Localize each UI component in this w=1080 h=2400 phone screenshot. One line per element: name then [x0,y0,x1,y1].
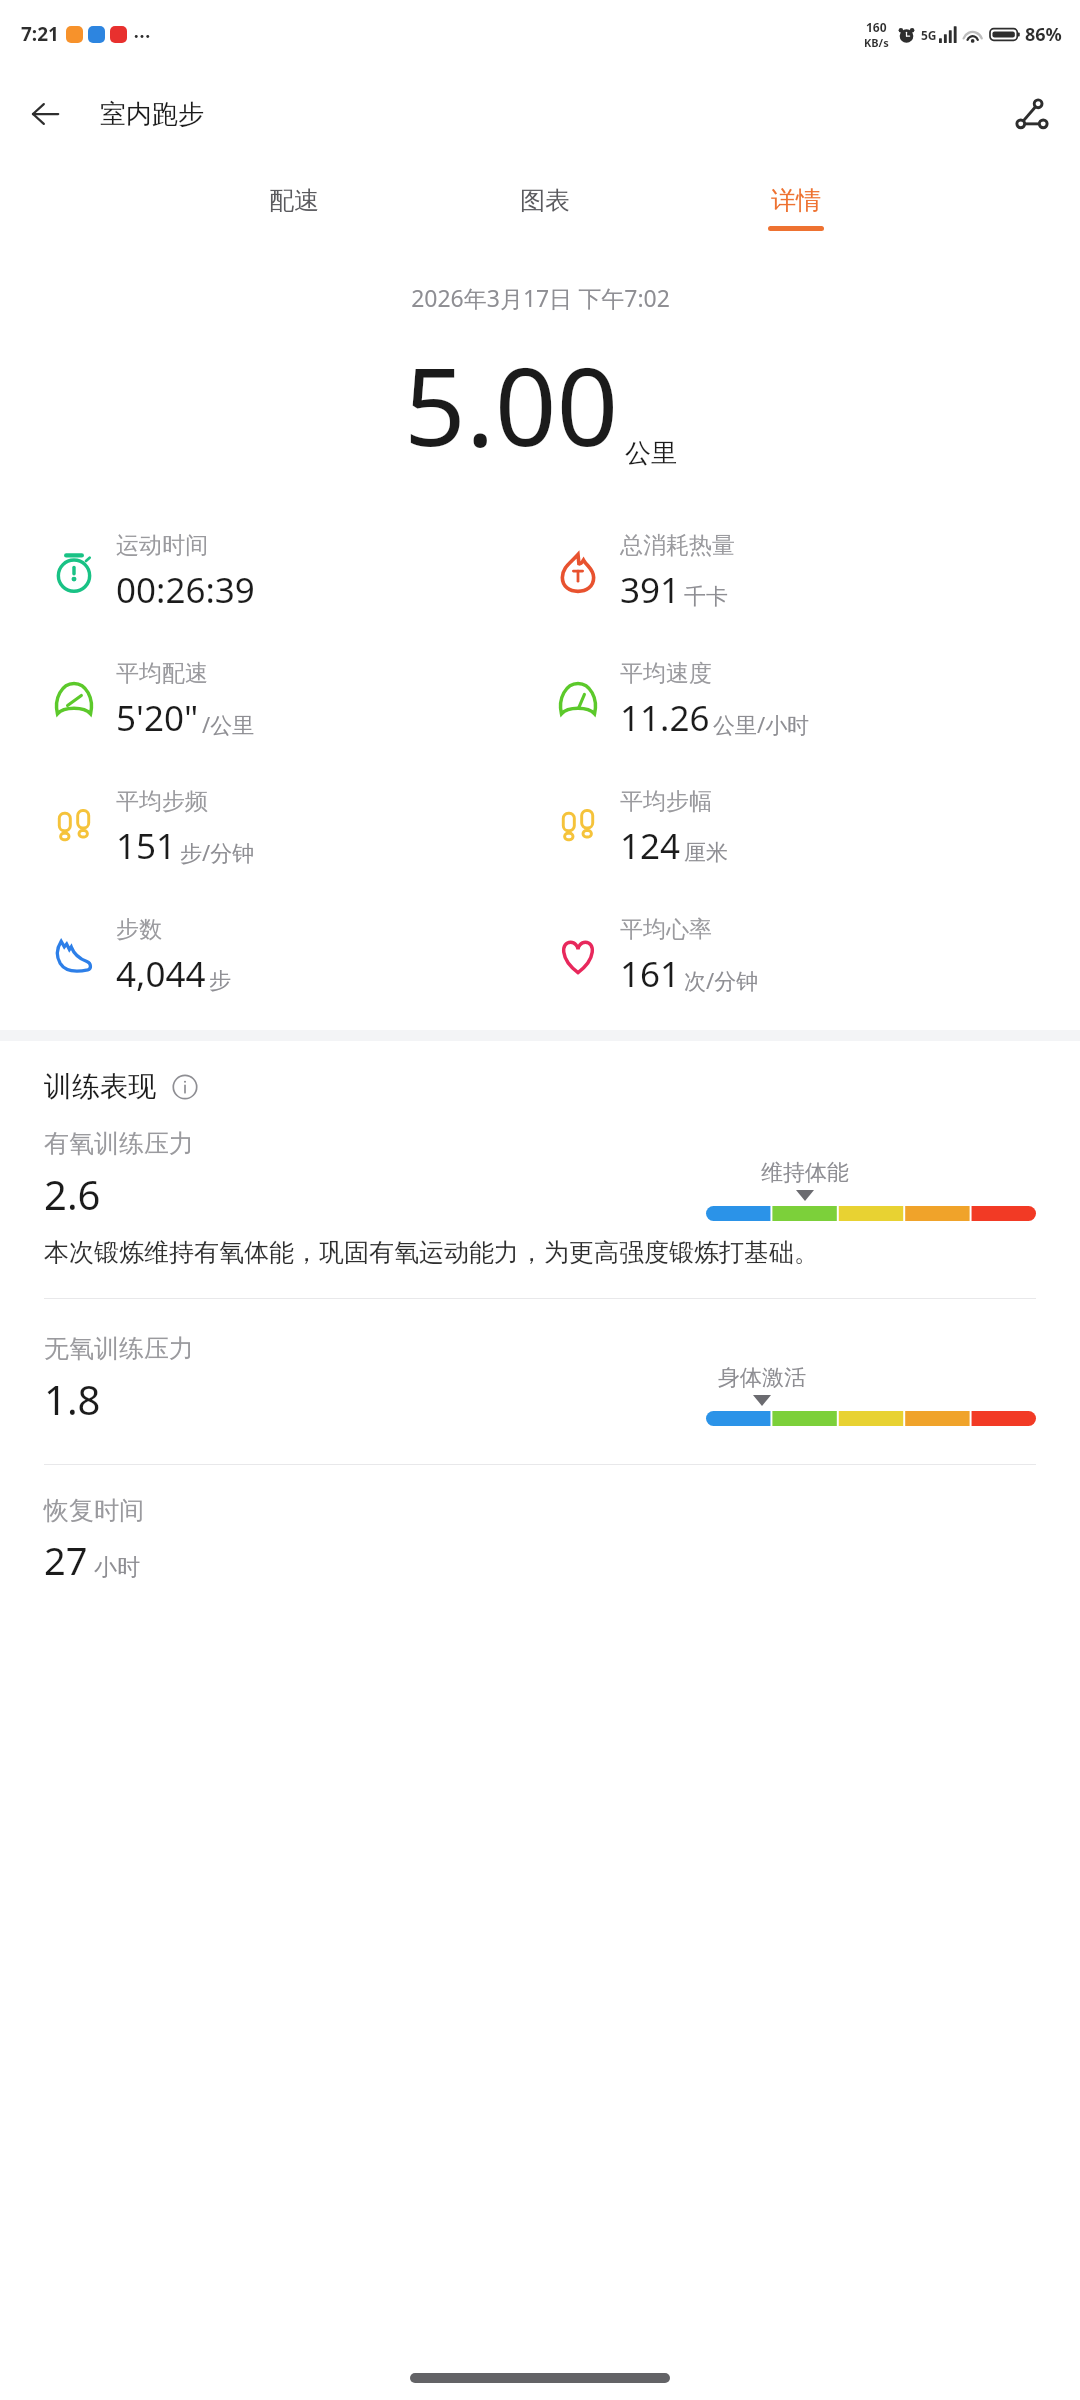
staticText: 总消耗热量 [620,531,735,560]
staticText: 步/分钟 [180,837,255,867]
staticText: 平均心率 [620,915,712,944]
staticText: 5.00 [404,331,619,478]
button[interactable]: 运动时间 [0,508,540,636]
button[interactable]: 平均配速 [0,636,540,764]
staticText: 身体激活 [718,1364,806,1392]
staticText: 4,044 [116,950,206,998]
staticText: 2026年3月17日 下午7:02 [411,282,670,313]
staticText: 公里 [625,437,677,470]
staticText: 2.6 [44,1167,101,1221]
button[interactable]: 详情 [762,181,830,235]
staticText: 124 [620,822,681,870]
staticText: 步 [209,967,231,995]
staticText: 5G [921,27,937,43]
staticText: 公里/小时 [713,709,810,739]
staticText: 151 [116,822,177,870]
staticText: 步数 [116,915,162,944]
button[interactable]: 配速 [260,181,328,235]
button[interactable]: Share [1002,84,1062,144]
staticText: 86% [1025,22,1062,47]
staticText: 有氧训练压力 [44,1128,194,1159]
staticText: 训练表现 [44,1069,156,1104]
button[interactable]: 平均步频 [0,764,540,892]
staticText: 维持体能 [761,1159,849,1187]
staticText: 平均配速 [116,659,208,688]
staticText: 7:21 [21,21,59,47]
button[interactable]: Info [168,1070,202,1104]
button[interactable]: 平均速度 [540,636,1080,764]
button[interactable]: 平均心率 [540,892,1080,1020]
staticText: 小时 [94,1553,140,1582]
staticText: 详情 [771,185,821,216]
staticText: 配速 [269,185,319,216]
staticText: 5'20" [116,694,199,742]
button[interactable]: 总消耗热量 [540,508,1080,636]
staticText: 平均步频 [116,787,208,816]
staticText: 图表 [520,185,570,216]
staticText: 无氧训练压力 [44,1333,194,1364]
staticText: 160 [866,19,887,35]
staticText: 千卡 [684,583,728,611]
staticText: 室内跑步 [100,98,204,131]
staticText: 本次锻炼维持有氧体能，巩固有氧运动能力，为更高强度锻炼打基础。 [44,1237,819,1268]
staticText: 391 [620,566,681,614]
staticText: 11.26 [620,694,710,742]
staticText: KB/s [864,35,889,50]
staticText: /公里 [202,709,255,739]
staticText: 运动时间 [116,531,208,560]
staticText: 平均步幅 [620,787,712,816]
staticText: 27 [44,1534,88,1586]
button[interactable]: 图表 [511,181,579,235]
button[interactable]: 步数 [0,892,540,1020]
staticText: 平均速度 [620,659,712,688]
staticText: 厘米 [684,839,728,867]
button[interactable]: Back [16,85,74,143]
button[interactable]: 平均步幅 [540,764,1080,892]
staticText: 恢复时间 [44,1495,144,1526]
staticText: 00:26:39 [116,566,255,614]
staticText: 161 [620,950,681,998]
staticText: 1.8 [44,1372,101,1426]
staticText: 次/分钟 [684,965,759,995]
